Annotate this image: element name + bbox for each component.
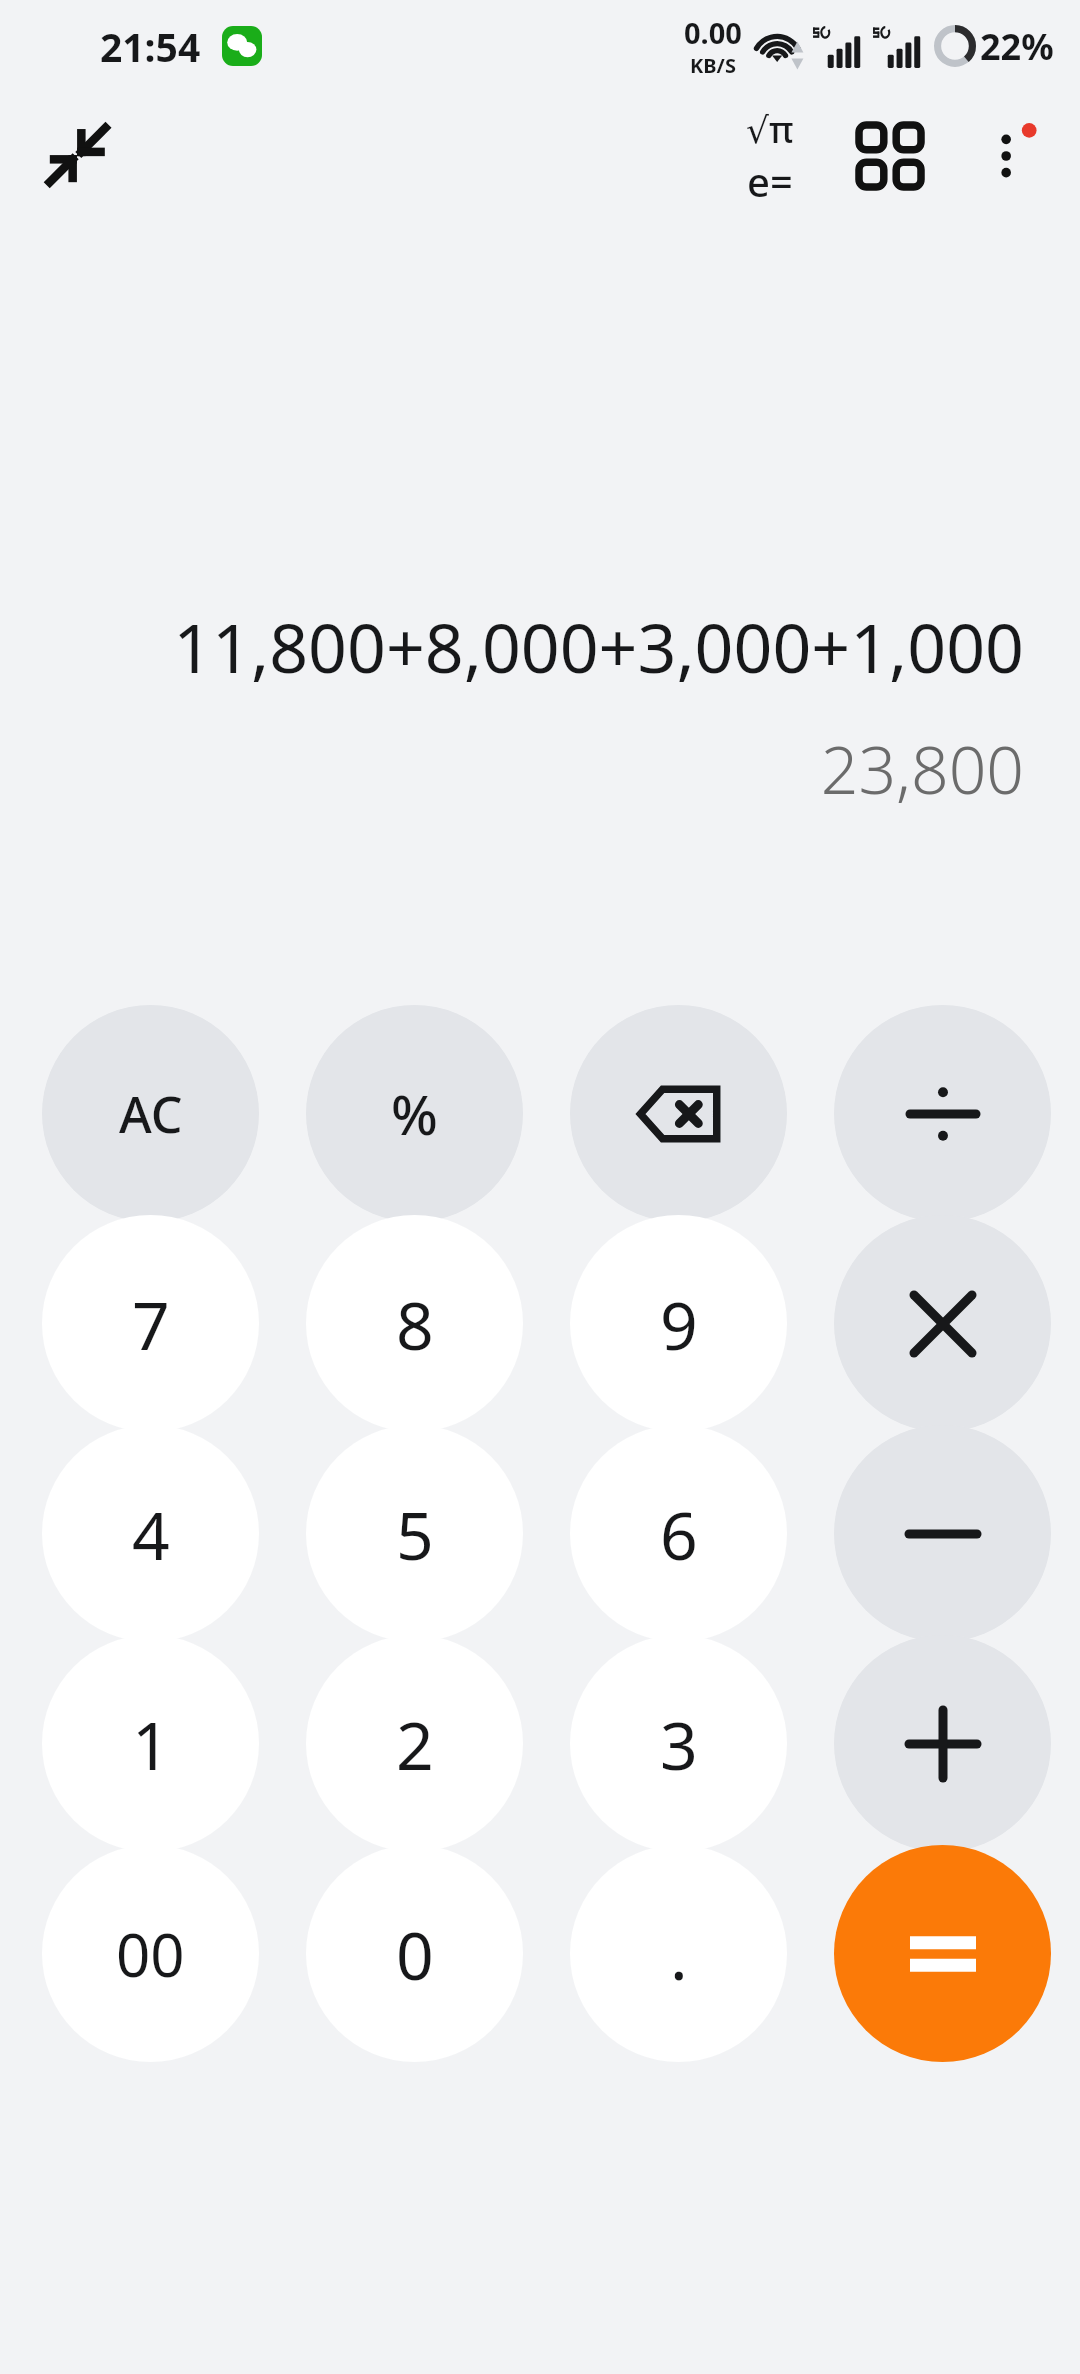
button[interactable]: 2 (306, 1635, 523, 1852)
button[interactable]: 3 (570, 1635, 787, 1852)
button[interactable]: 7 (42, 1215, 259, 1432)
staticText: 11,800+8,000+3,000+1,000 (173, 600, 1024, 693)
staticText: . (670, 1909, 688, 1999)
staticText: AC (119, 1080, 183, 1148)
button[interactable]: . (570, 1845, 787, 2062)
staticText: e= (747, 154, 793, 208)
staticText: 3 (660, 1699, 698, 1789)
staticText: 1 (132, 1699, 170, 1789)
button[interactable]: Collapse (22, 100, 132, 210)
button[interactable]: Plus (834, 1635, 1051, 1852)
staticText: 0 (396, 1909, 434, 1999)
staticText: KB/S (690, 52, 736, 79)
button[interactable]: % (306, 1005, 523, 1222)
button[interactable]: 00 (42, 1845, 259, 2062)
button[interactable]: Minus (834, 1425, 1051, 1642)
staticText: 7 (132, 1279, 170, 1369)
button[interactable]: Backspace (570, 1005, 787, 1222)
staticText: 00 (116, 1913, 185, 1995)
staticText: 23,800 (820, 723, 1024, 813)
button[interactable]: Converter (830, 96, 950, 216)
button[interactable]: 0 (306, 1845, 523, 2062)
staticText: 4 (132, 1489, 170, 1579)
staticText: 0.00 (684, 13, 742, 52)
staticText: 22% (980, 22, 1054, 71)
button[interactable]: More options (950, 96, 1070, 216)
button[interactable]: 6 (570, 1425, 787, 1642)
button[interactable]: 9 (570, 1215, 787, 1432)
button[interactable]: 4 (42, 1425, 259, 1642)
button[interactable]: Multiply (834, 1215, 1051, 1432)
staticText: 8 (396, 1279, 434, 1369)
staticText: 6 (660, 1489, 698, 1579)
staticText: √π (746, 105, 794, 154)
button[interactable]: Divide (834, 1005, 1051, 1222)
staticText: 9 (660, 1279, 698, 1369)
button[interactable]: Scientific mode (710, 96, 830, 216)
button[interactable]: 5 (306, 1425, 523, 1642)
button[interactable]: 1 (42, 1635, 259, 1852)
staticText: 21:54 (100, 20, 201, 73)
button[interactable]: Equals (834, 1845, 1051, 2062)
staticText: 2 (396, 1699, 434, 1789)
staticText: % (391, 1076, 438, 1151)
button[interactable]: AC (42, 1005, 259, 1222)
staticText: 5 (396, 1489, 434, 1579)
button[interactable]: 8 (306, 1215, 523, 1432)
